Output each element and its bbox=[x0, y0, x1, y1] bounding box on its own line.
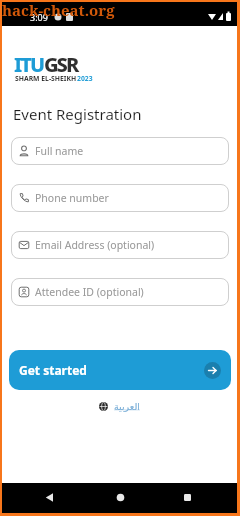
staticText: hack-cheat.org bbox=[2, 0, 115, 20]
button[interactable]: العربية bbox=[99, 401, 140, 412]
staticText: GSR bbox=[44, 51, 78, 78]
button[interactable] bbox=[176, 486, 198, 508]
staticText: SHARM EL-SHEIKH bbox=[15, 74, 77, 83]
staticText: Email Address (optional) bbox=[35, 238, 155, 252]
staticText: Attendee ID (optional) bbox=[35, 285, 144, 299]
button[interactable]: Attendee ID (optional) bbox=[11, 278, 229, 306]
staticText: 3:09 bbox=[30, 11, 48, 23]
button[interactable] bbox=[38, 486, 60, 508]
staticText: Full name bbox=[35, 144, 84, 158]
button[interactable] bbox=[109, 486, 131, 508]
staticText: Phone number bbox=[35, 191, 109, 205]
button[interactable]: Email Address (optional) bbox=[11, 231, 229, 259]
staticText: ITU bbox=[14, 51, 44, 78]
staticText: Event Registration bbox=[13, 104, 142, 124]
button[interactable]: Phone number bbox=[11, 184, 229, 212]
staticText: 2023 bbox=[77, 74, 93, 83]
staticText: العربية bbox=[114, 401, 140, 412]
staticText: Get started bbox=[19, 362, 87, 378]
button[interactable]: Get started bbox=[9, 350, 231, 390]
button[interactable]: Full name bbox=[11, 137, 229, 165]
